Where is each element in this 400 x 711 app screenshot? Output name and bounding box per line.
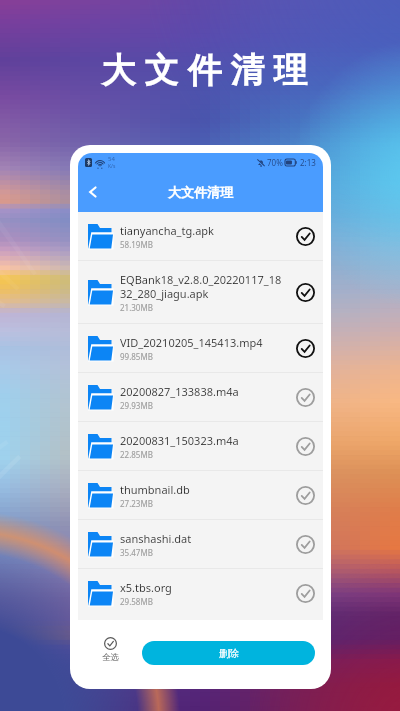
button[interactable]: VID_20210205_145413.mp4 xyxy=(78,324,323,372)
button[interactable]: x5.tbs.org xyxy=(78,569,323,617)
staticText: 2:13 xyxy=(300,157,316,168)
staticText: 20200831_150323.m4a xyxy=(120,433,239,448)
staticText: 27.23MB xyxy=(120,498,153,509)
button[interactable]: 20200827_133838.m4a xyxy=(78,373,323,421)
staticText: sanshashi.dat xyxy=(120,531,192,546)
button[interactable]: sanshashi.dat xyxy=(78,520,323,568)
staticText: 29.93MB xyxy=(120,400,153,411)
staticText: tianyancha_tg.apk xyxy=(120,223,214,238)
button[interactable]: 删除 xyxy=(142,641,315,665)
staticText: 99.85MB xyxy=(120,351,153,362)
button[interactable]: EQBank18_v2.8.0_20220117_1832_280_jiagu.… xyxy=(78,261,323,323)
staticText: x5.tbs.org xyxy=(120,580,172,595)
staticText: K/s xyxy=(108,163,116,170)
staticText: 全选 xyxy=(102,652,119,663)
button[interactable]: Back xyxy=(78,177,108,207)
staticText: 22.85MB xyxy=(120,449,153,460)
staticText: 大文件清理 xyxy=(168,184,233,200)
staticText: 35.47MB xyxy=(120,547,153,558)
staticText: 删除 xyxy=(219,647,239,660)
button[interactable]: thumbnail.db xyxy=(78,471,323,519)
staticText: 29.58MB xyxy=(120,596,153,607)
button[interactable]: 20200831_150323.m4a xyxy=(78,422,323,470)
staticText: 58.19MB xyxy=(120,239,153,250)
staticText: 54 xyxy=(108,155,115,163)
staticText: EQBank18_v2.8.0_20220117_1832_280_jiagu.… xyxy=(120,272,284,301)
staticText: thumbnail.db xyxy=(120,482,190,497)
staticText: 21.30MB xyxy=(120,302,153,313)
staticText: 大文件清理 xyxy=(97,49,312,92)
staticText: 20200827_133838.m4a xyxy=(120,384,239,399)
button[interactable]: 全选 xyxy=(102,637,119,663)
staticText: VID_20210205_145413.mp4 xyxy=(120,335,263,350)
button[interactable]: tianyancha_tg.apk xyxy=(78,212,323,260)
staticText: 70% xyxy=(267,157,283,168)
